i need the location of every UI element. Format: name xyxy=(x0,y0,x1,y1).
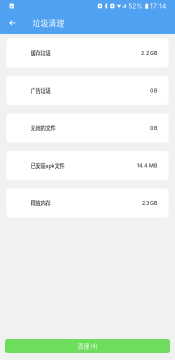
button[interactable]: 释放内存 xyxy=(6,188,168,217)
staticText: 2.2 GB xyxy=(141,50,158,56)
button[interactable]: 已安装apk文件 xyxy=(6,151,168,180)
staticText: 0 B xyxy=(150,87,158,94)
staticText: 0 B xyxy=(150,125,158,131)
staticText: 清理 (4) xyxy=(77,342,97,350)
staticText: 52% xyxy=(128,2,143,10)
button[interactable]: 广告垃圾 xyxy=(6,76,168,105)
button[interactable]: 清理 (4) xyxy=(5,339,170,353)
staticText: 释放内存 xyxy=(30,199,50,207)
staticText: 广告垃圾 xyxy=(30,87,50,94)
button[interactable]: 无用的文件 xyxy=(6,113,168,142)
button[interactable]: Back xyxy=(1,12,23,34)
staticText: 17:14 xyxy=(150,2,166,10)
staticText: 已安装apk文件 xyxy=(30,162,64,169)
button[interactable]: 缓存垃圾 xyxy=(6,38,168,67)
staticText: 缓存垃圾 xyxy=(30,49,50,57)
staticText: 2.3 GB xyxy=(142,200,158,206)
staticText: 14.4 MB xyxy=(137,162,158,169)
staticText: 垃圾清理 xyxy=(32,17,64,29)
staticText: 无用的文件 xyxy=(30,124,55,132)
